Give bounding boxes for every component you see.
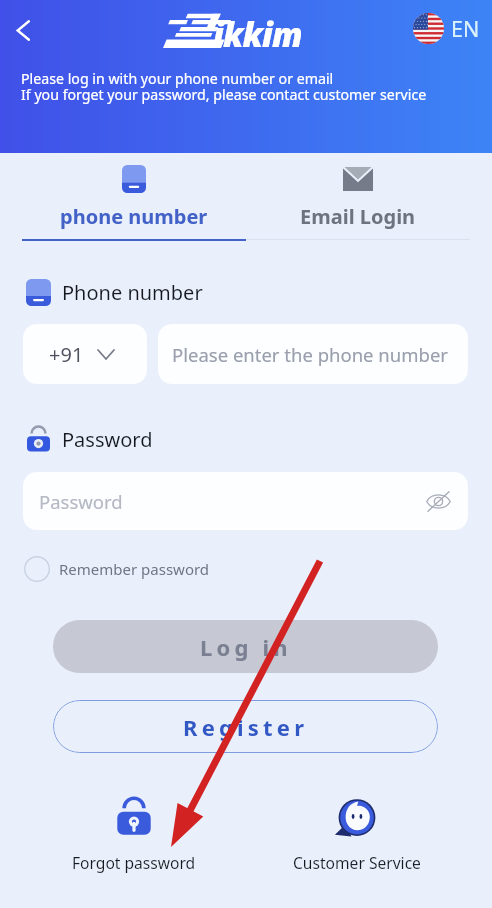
staticText: Log in <box>200 632 292 662</box>
staticText: phone number <box>60 203 208 230</box>
staticText: Phone number <box>62 279 203 306</box>
button[interactable]: Show password <box>418 481 458 521</box>
button[interactable]: Customer Service <box>277 796 437 873</box>
button[interactable]: Password <box>23 472 468 530</box>
button[interactable]: Language EN <box>413 13 480 44</box>
button[interactable]: Log in <box>53 620 438 673</box>
staticText: Email Login <box>300 203 416 230</box>
staticText: Please log in with your phone number or … <box>21 69 334 88</box>
button[interactable]: +91 <box>23 324 147 384</box>
button[interactable]: Forgot password <box>54 796 214 873</box>
button[interactable]: Please enter the phone number <box>158 324 468 384</box>
staticText: Register <box>183 712 309 742</box>
staticText: ikkim <box>213 12 302 57</box>
button[interactable]: Email Login <box>246 153 470 241</box>
staticText: Please enter the phone number <box>172 342 448 367</box>
staticText: If you forget your password, please cont… <box>21 85 427 104</box>
staticText: Customer Service <box>293 852 421 873</box>
staticText: Remember password <box>59 559 210 579</box>
button[interactable]: Register <box>53 700 438 753</box>
button[interactable]: Remember password <box>24 556 210 582</box>
staticText: +91 <box>49 341 84 368</box>
staticText: Password <box>39 489 123 514</box>
staticText: Forgot password <box>72 852 196 873</box>
button[interactable]: Back <box>0 7 46 53</box>
staticText: Password <box>62 426 153 453</box>
staticText: EN <box>451 14 480 43</box>
button[interactable]: phone number <box>22 153 246 241</box>
